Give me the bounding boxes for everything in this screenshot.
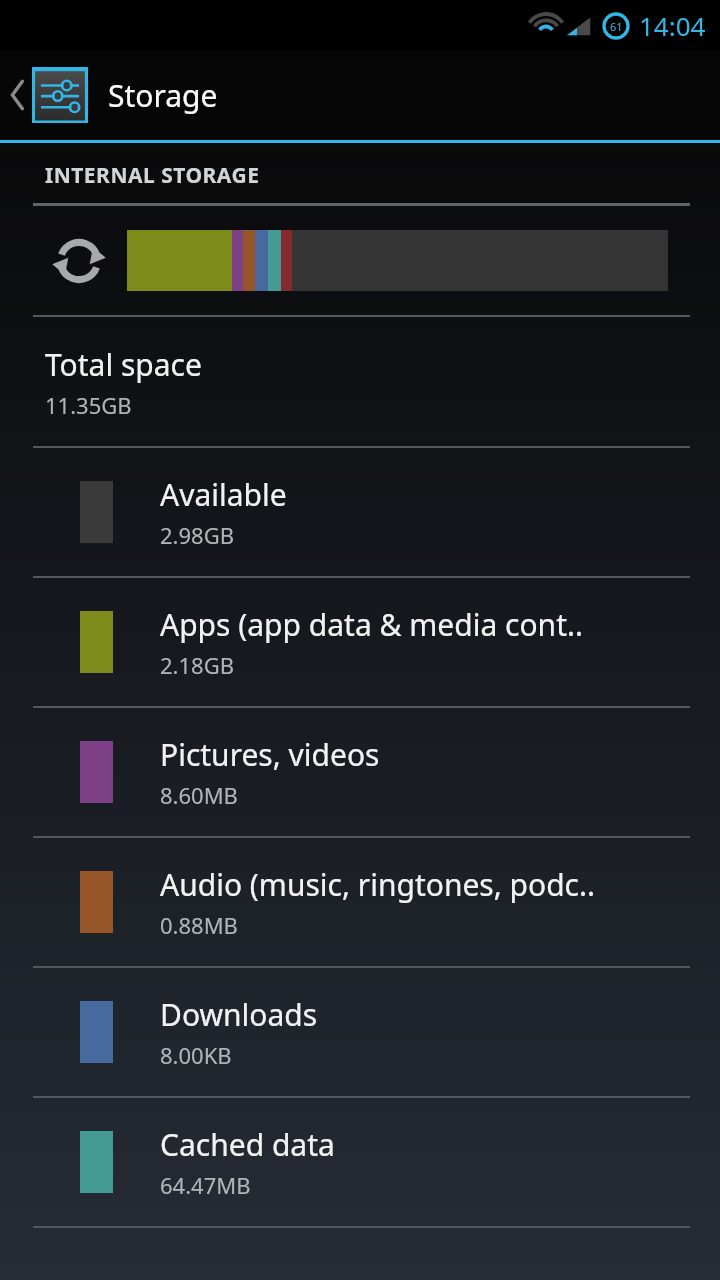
- staticText: Storage: [108, 75, 218, 116]
- button[interactable]: Refresh storage usage: [0, 206, 720, 315]
- staticText: INTERNAL STORAGE: [45, 161, 260, 190]
- staticText: 14:04: [639, 8, 706, 43]
- staticText: Total space: [45, 344, 202, 385]
- button[interactable]: Available: [0, 448, 720, 576]
- staticText: Cached data: [160, 1124, 335, 1165]
- staticText: Pictures, videos: [160, 734, 380, 775]
- staticText: 8.00KB: [160, 1040, 232, 1070]
- staticText: Apps (app data & media cont..: [160, 604, 584, 645]
- staticText: Available: [160, 474, 287, 515]
- staticText: 0.88MB: [160, 910, 238, 940]
- staticText: Audio (music, ringtones, podc..: [160, 864, 596, 905]
- staticText: 64.47MB: [160, 1170, 251, 1200]
- button[interactable]: Pictures, videos: [0, 708, 720, 836]
- button[interactable]: Apps (app data & media cont..: [0, 578, 720, 706]
- staticText: 11.35GB: [45, 390, 132, 420]
- staticText: Downloads: [160, 994, 318, 1035]
- button[interactable]: Audio (music, ringtones, podc..: [0, 838, 720, 966]
- button[interactable]: Navigate up, Storage: [0, 50, 720, 140]
- button[interactable]: Cached data: [0, 1098, 720, 1226]
- button[interactable]: Downloads: [0, 968, 720, 1096]
- staticText: 2.98GB: [160, 520, 234, 550]
- button[interactable]: Total space: [0, 317, 720, 446]
- staticText: 8.60MB: [160, 780, 238, 810]
- staticText: 61: [610, 19, 623, 34]
- staticText: 2.18GB: [160, 650, 234, 680]
